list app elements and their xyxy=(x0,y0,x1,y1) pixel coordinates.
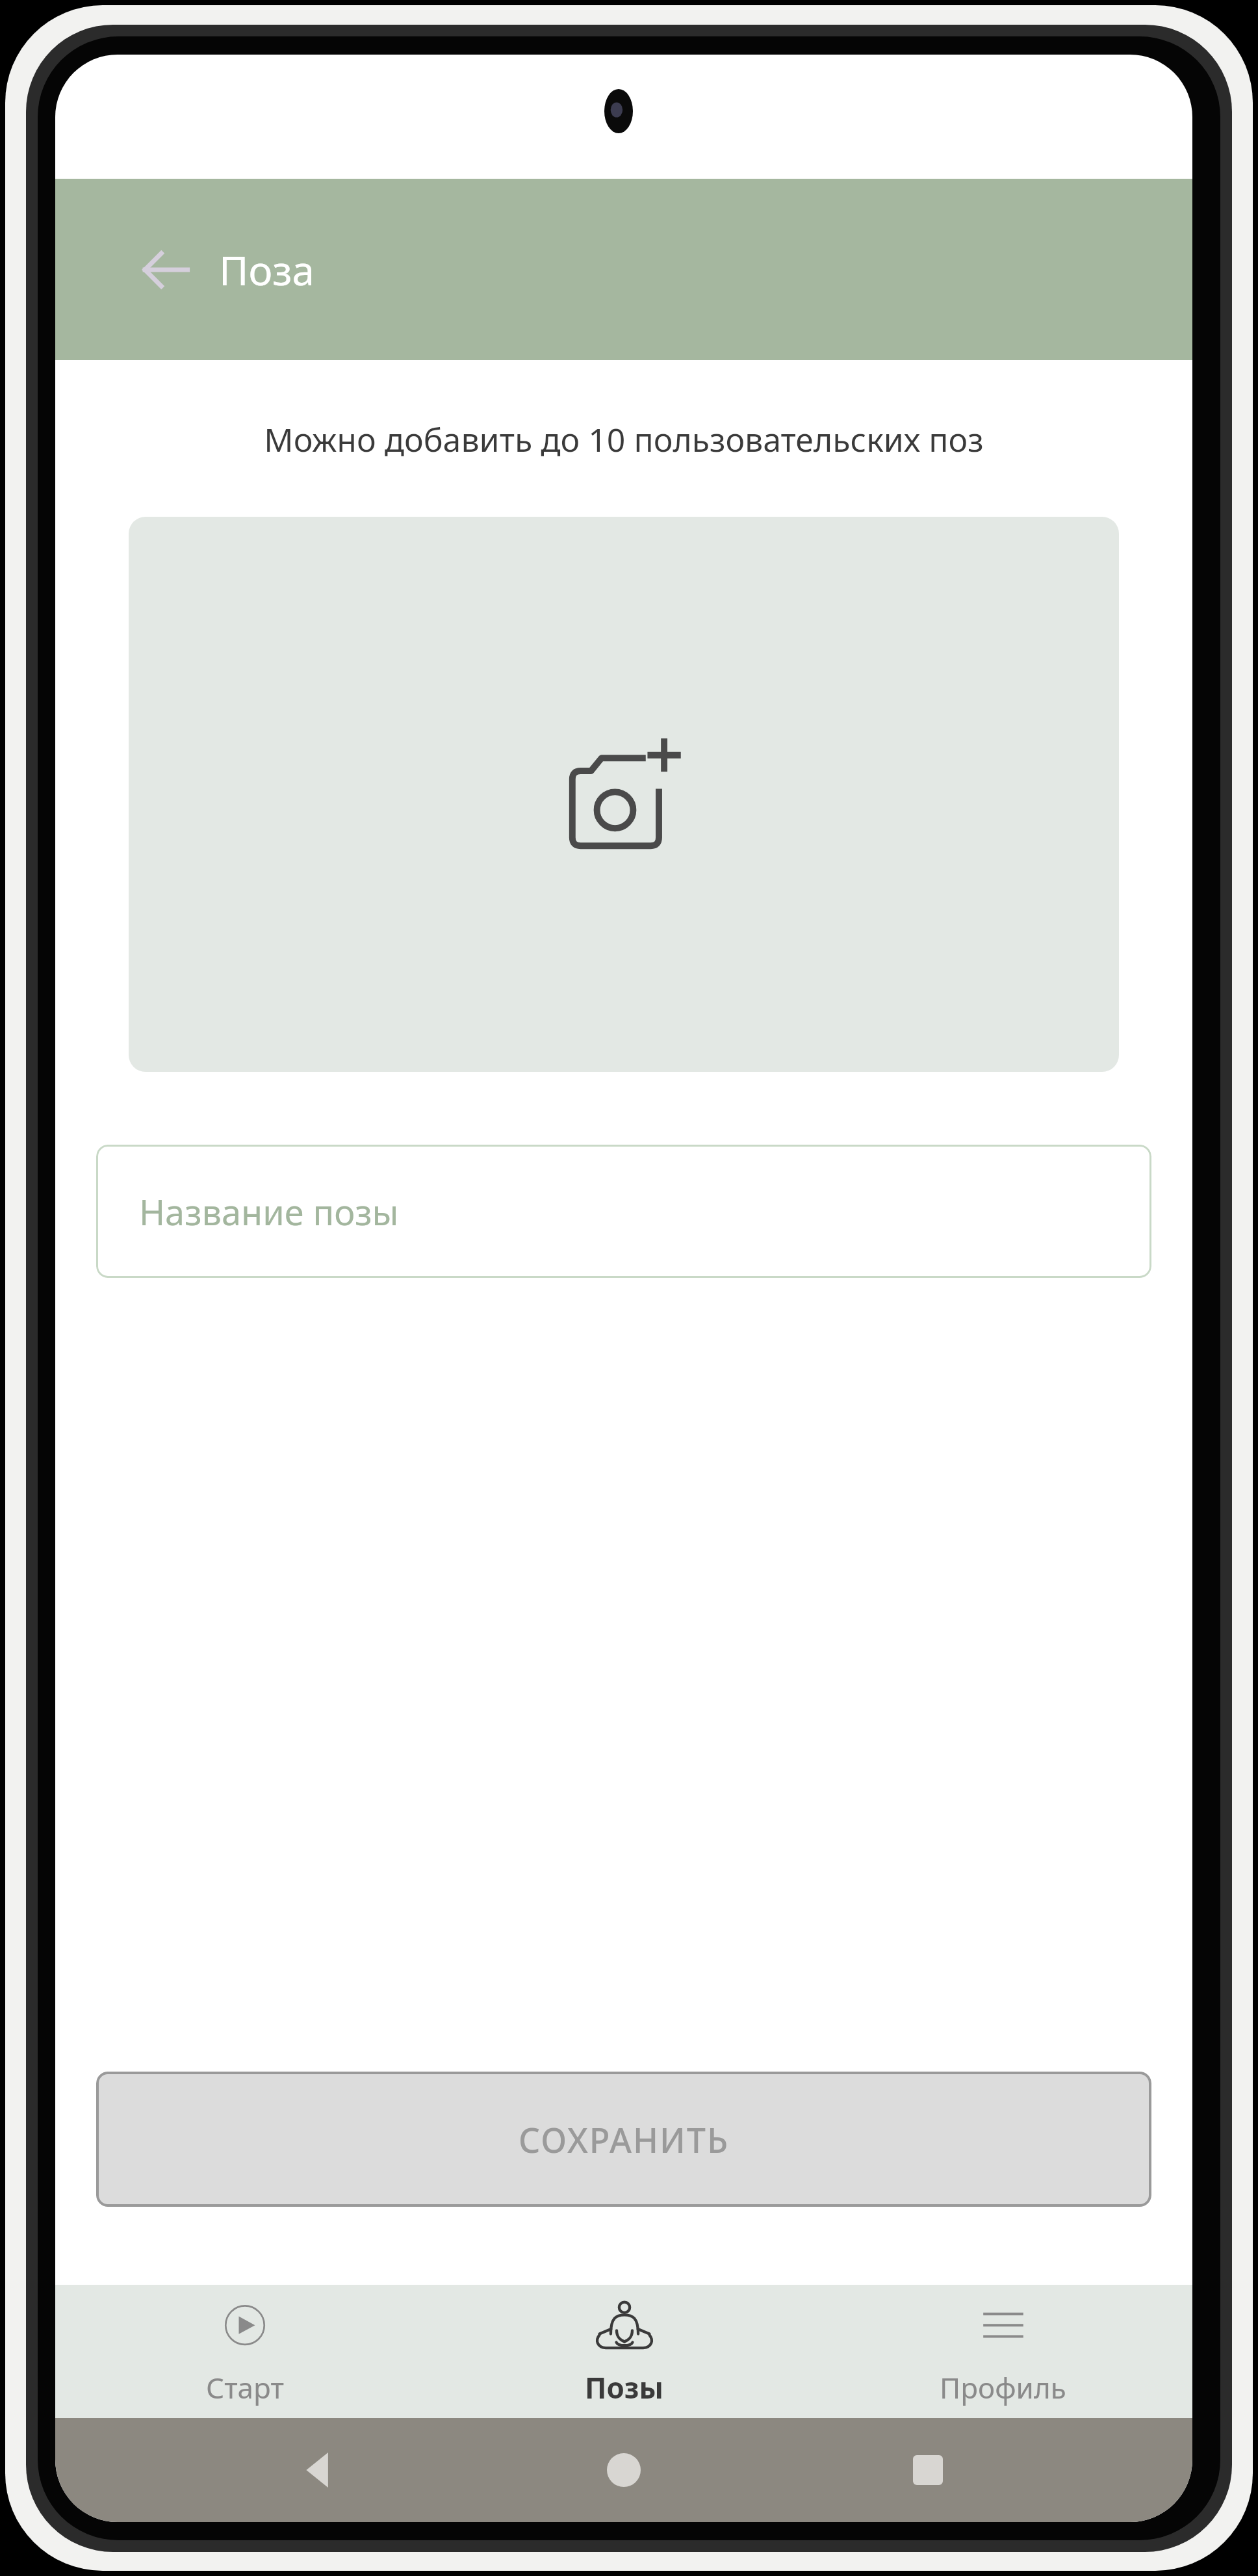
button[interactable]: Назад xyxy=(281,2431,359,2509)
staticText: Поза xyxy=(219,242,315,297)
button[interactable]: Добавить фото xyxy=(129,517,1119,1072)
button[interactable]: Недавние xyxy=(889,2431,967,2509)
staticText: Позы xyxy=(585,2368,664,2407)
button[interactable]: СОХРАНИТЬ xyxy=(96,2072,1151,2207)
staticText: Старт xyxy=(206,2368,284,2407)
staticText: Название позы xyxy=(139,1188,399,1236)
button[interactable]: Профиль xyxy=(814,2291,1192,2412)
button[interactable]: Главный экран xyxy=(585,2431,663,2509)
staticText: Можно добавить до 10 пользовательских по… xyxy=(264,417,984,462)
staticText: СОХРАНИТЬ xyxy=(519,2116,730,2163)
button[interactable]: Позы xyxy=(435,2291,814,2412)
staticText: Профиль xyxy=(940,2368,1066,2407)
button[interactable]: Назад xyxy=(127,231,205,309)
button[interactable]: Старт xyxy=(55,2291,435,2412)
button[interactable]: Название позы xyxy=(96,1145,1151,1278)
